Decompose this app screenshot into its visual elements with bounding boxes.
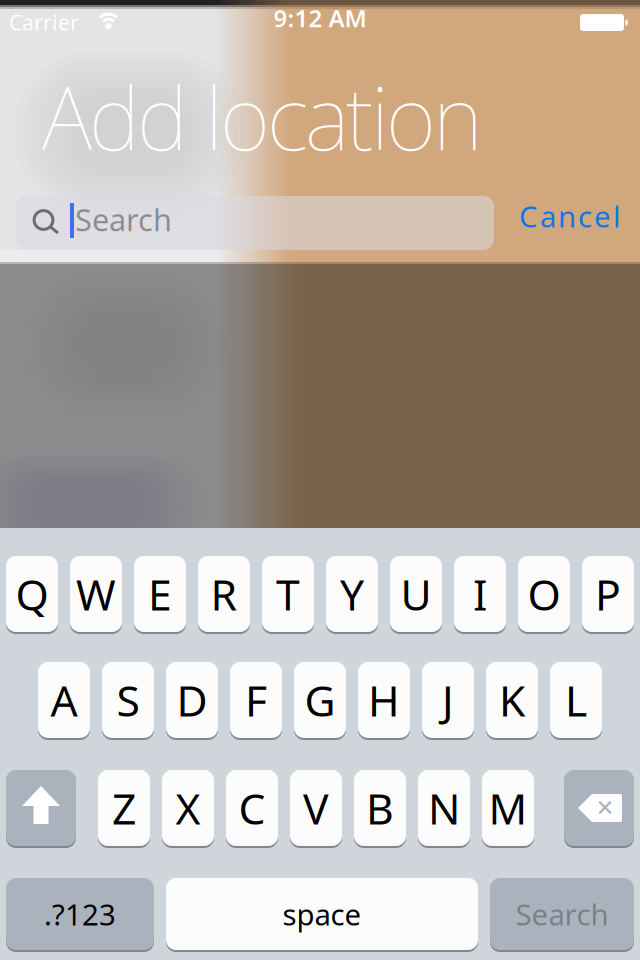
staticText: 9:12 AM [273,2,366,34]
staticText: H [368,672,400,728]
staticText: space [282,894,361,933]
button[interactable]: D [166,661,218,739]
staticText: C [238,780,265,836]
staticText: O [527,566,560,622]
button[interactable]: S [102,661,154,739]
button[interactable]: O [518,555,570,633]
button[interactable]: R [198,555,250,633]
staticText: E [148,566,172,622]
staticText: I [473,566,487,622]
button[interactable]: Cancel [495,192,640,239]
staticText: ✕ [595,795,614,821]
staticText: Search [515,894,608,933]
staticText: Q [15,566,48,622]
button[interactable]: K [486,661,538,739]
staticText: Search [75,199,172,240]
button[interactable]: L [550,661,602,739]
button[interactable]: N [418,769,470,847]
staticText: B [366,780,394,836]
button[interactable]: Z [98,769,150,847]
button[interactable]: F [230,661,282,739]
staticText: K [499,672,525,728]
staticText: U [400,566,431,622]
button[interactable]: U [390,555,442,633]
staticText: D [176,672,207,728]
button[interactable]: E [134,555,186,633]
staticText: Add location [42,59,483,174]
button[interactable]: B [354,769,406,847]
staticText: T [276,566,300,622]
button[interactable]: G [294,661,346,739]
button[interactable]: space [166,877,478,951]
button[interactable]: Q [6,555,58,633]
staticText: W [76,566,116,622]
button[interactable]: Delete [564,768,634,848]
button[interactable]: Search [490,877,634,951]
staticText: M [488,780,527,836]
button[interactable]: X [162,769,214,847]
staticText: V [303,780,329,836]
button[interactable]: P [582,555,634,633]
staticText: J [442,672,454,728]
button[interactable]: Shift [6,768,76,848]
button[interactable]: Y [326,555,378,633]
staticText: L [565,672,587,728]
staticText: .?123 [44,894,116,933]
staticText: X [175,780,200,836]
button[interactable]: W [70,555,122,633]
button[interactable]: Search [16,196,494,250]
staticText: F [245,672,267,728]
staticText: Carrier [9,8,79,36]
staticText: P [595,566,621,622]
button[interactable]: C [226,769,278,847]
button[interactable]: J [422,661,474,739]
button[interactable]: H [358,661,410,739]
button[interactable]: I [454,555,506,633]
staticText: G [304,672,335,728]
staticText: A [50,672,77,728]
button[interactable]: T [262,555,314,633]
button[interactable]: V [290,769,342,847]
staticText: Cancel [519,196,621,235]
staticText: N [428,780,460,836]
button[interactable]: A [38,661,90,739]
staticText: R [210,566,237,622]
button[interactable]: .?123 [6,877,154,951]
staticText: Y [340,566,364,622]
button[interactable]: M [482,769,534,847]
staticText: S [116,672,139,728]
staticText: Z [112,780,136,836]
